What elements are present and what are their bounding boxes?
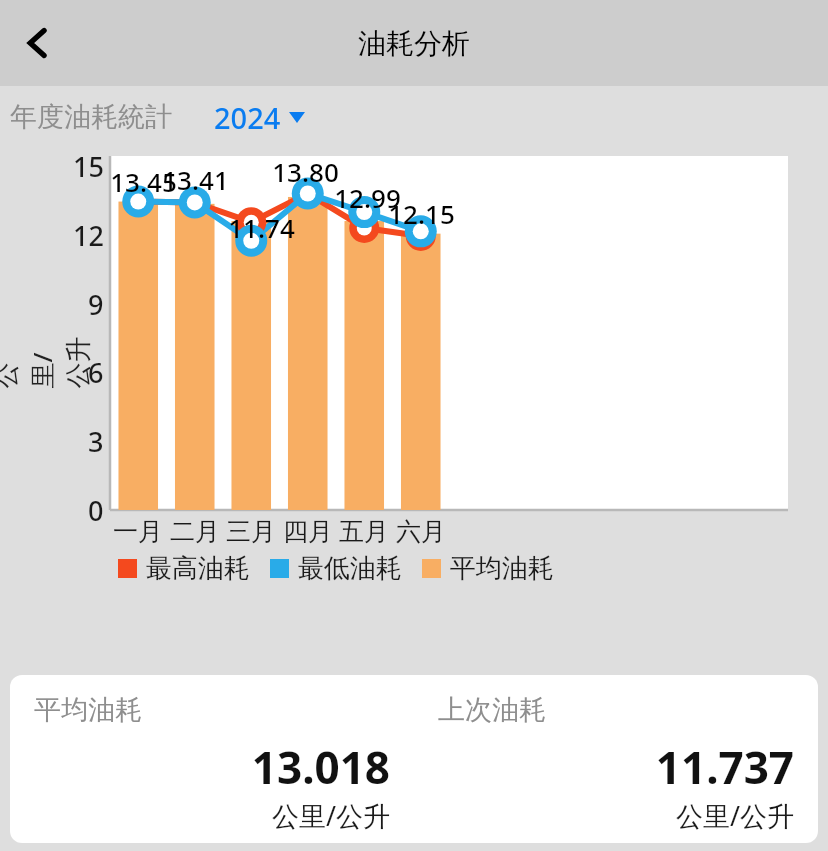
button[interactable]: 最高油耗 <box>118 552 250 585</box>
staticText: 年度油耗統計 <box>10 100 172 134</box>
staticText: 平均油耗 <box>34 693 142 727</box>
staticText: 13.41 <box>162 162 229 197</box>
staticText: 公里/公升 <box>438 797 794 834</box>
staticText: 13.018 <box>34 737 390 797</box>
staticText: 六月 <box>396 516 446 547</box>
staticText: 四月 <box>283 516 333 547</box>
staticText: 6 <box>88 354 104 391</box>
staticText: 2024 <box>214 98 281 137</box>
staticText: 二月 <box>170 516 220 547</box>
staticText: 最高油耗 <box>146 552 250 585</box>
button[interactable]: 2024 <box>214 98 305 137</box>
button[interactable]: 最低油耗 <box>270 552 402 585</box>
staticText: 0 <box>88 492 104 529</box>
button[interactable]: Back <box>0 0 76 86</box>
staticText: 9 <box>88 286 104 323</box>
button[interactable]: 平均油耗 <box>10 675 818 843</box>
staticText: 13.45 <box>110 164 177 199</box>
staticText: 公里/公升 <box>0 328 94 388</box>
staticText: 五月 <box>339 516 389 547</box>
staticText: 11.74 <box>228 210 295 245</box>
staticText: 三月 <box>226 516 276 547</box>
staticText: 一月 <box>113 516 163 547</box>
staticText: 最低油耗 <box>298 552 402 585</box>
staticText: 12.15 <box>388 196 455 231</box>
staticText: 12.99 <box>334 180 401 215</box>
button[interactable]: 平均油耗 <box>422 552 554 585</box>
staticText: 上次油耗 <box>438 693 546 727</box>
staticText: 油耗分析 <box>358 26 470 61</box>
staticText: 11.737 <box>438 737 794 797</box>
staticText: 3 <box>88 423 104 460</box>
staticText: 15 <box>73 148 104 185</box>
staticText: 平均油耗 <box>450 552 554 585</box>
staticText: 12 <box>73 217 104 254</box>
staticText: 公里/公升 <box>34 797 390 834</box>
staticText: 13.80 <box>272 154 339 189</box>
